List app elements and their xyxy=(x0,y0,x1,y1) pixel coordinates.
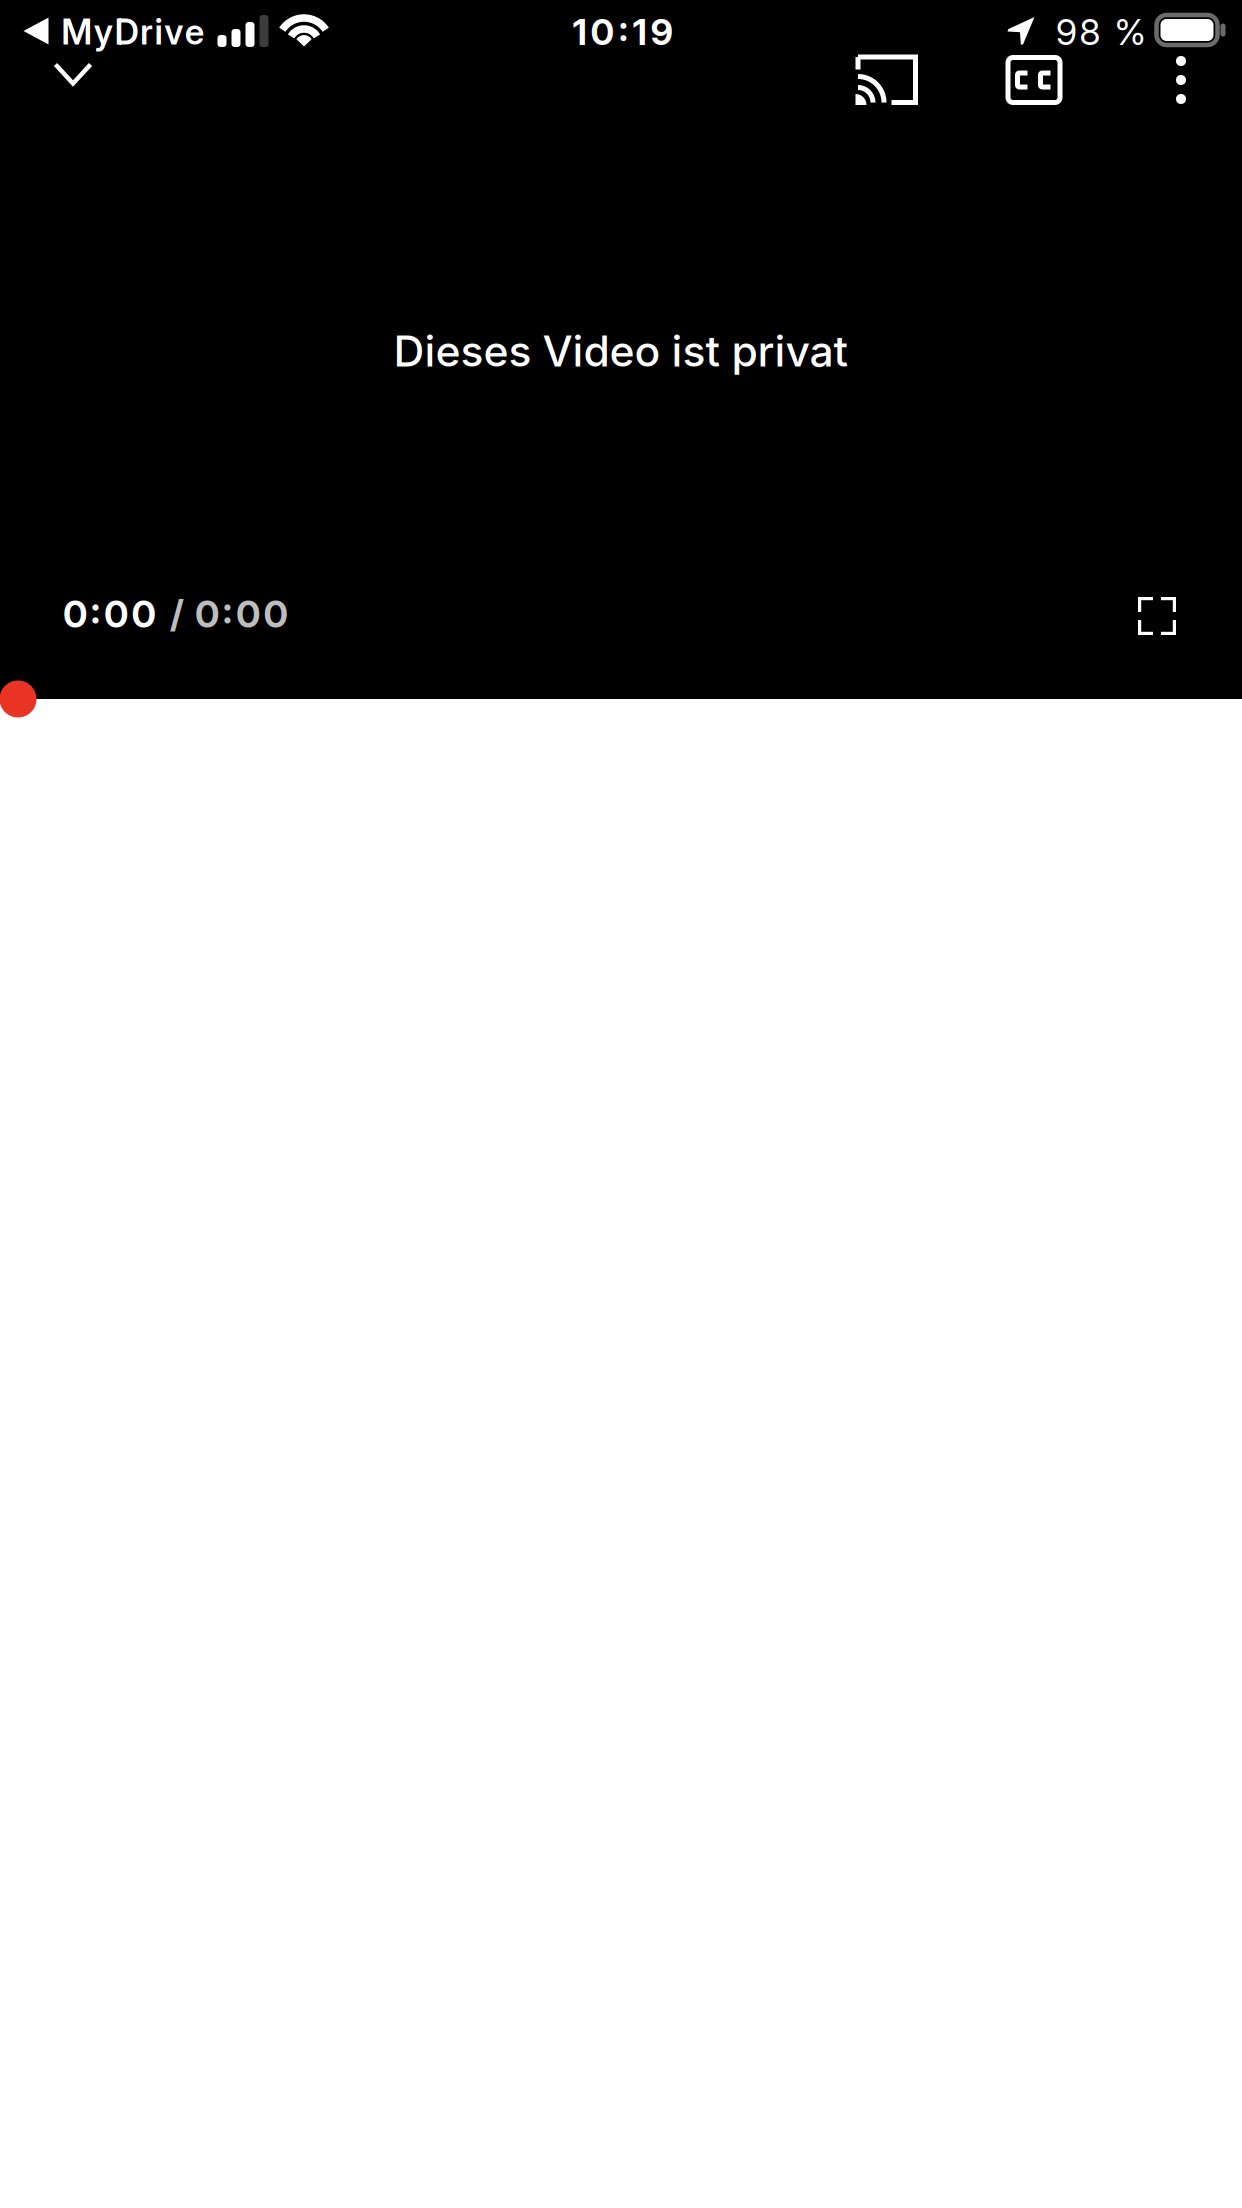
staticText: 98 % xyxy=(1056,10,1146,54)
staticText: / xyxy=(170,591,184,637)
button[interactable]: Fullscreen xyxy=(1109,568,1205,664)
button[interactable]: Minimize player xyxy=(21,26,125,122)
button[interactable]: Cast xyxy=(835,32,939,128)
button[interactable]: Subtitles xyxy=(982,32,1086,128)
button[interactable]: More options xyxy=(1133,32,1229,128)
staticText: 0:00 xyxy=(63,591,155,637)
staticText: 0:00 xyxy=(195,591,287,637)
staticText: 10:19 xyxy=(572,10,673,54)
staticText: MyDrive xyxy=(61,11,205,53)
staticText: Dieses Video ist privat xyxy=(393,325,848,377)
